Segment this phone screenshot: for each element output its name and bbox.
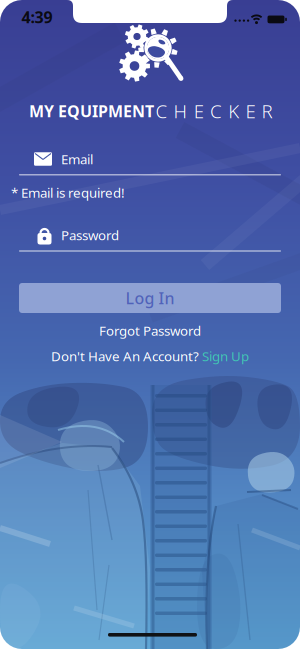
button[interactable]: Email: [19, 145, 281, 173]
staticText: H: [174, 99, 188, 123]
staticText: Password: [61, 226, 119, 244]
staticText: K: [228, 99, 239, 123]
staticText: Email: [61, 150, 93, 168]
staticText: Forgot Password: [99, 322, 201, 339]
staticText: C: [155, 99, 167, 123]
staticText: 4:39: [21, 6, 52, 28]
staticText: E: [245, 99, 255, 123]
button[interactable]: Forgot Password: [99, 322, 201, 339]
button[interactable]: Password: [19, 221, 281, 249]
staticText: E: [194, 99, 204, 123]
button[interactable]: Sign Up: [202, 347, 249, 365]
staticText: C: [210, 99, 222, 123]
staticText: Don't Have An Account?: [51, 347, 199, 365]
staticText: MY EQUIPMENT: [29, 100, 154, 122]
staticText: R: [262, 99, 273, 123]
staticText: Sign Up: [202, 347, 249, 365]
button[interactable]: Log In: [19, 283, 281, 313]
staticText: * Email is required!: [11, 184, 125, 201]
staticText: Log In: [125, 287, 174, 309]
